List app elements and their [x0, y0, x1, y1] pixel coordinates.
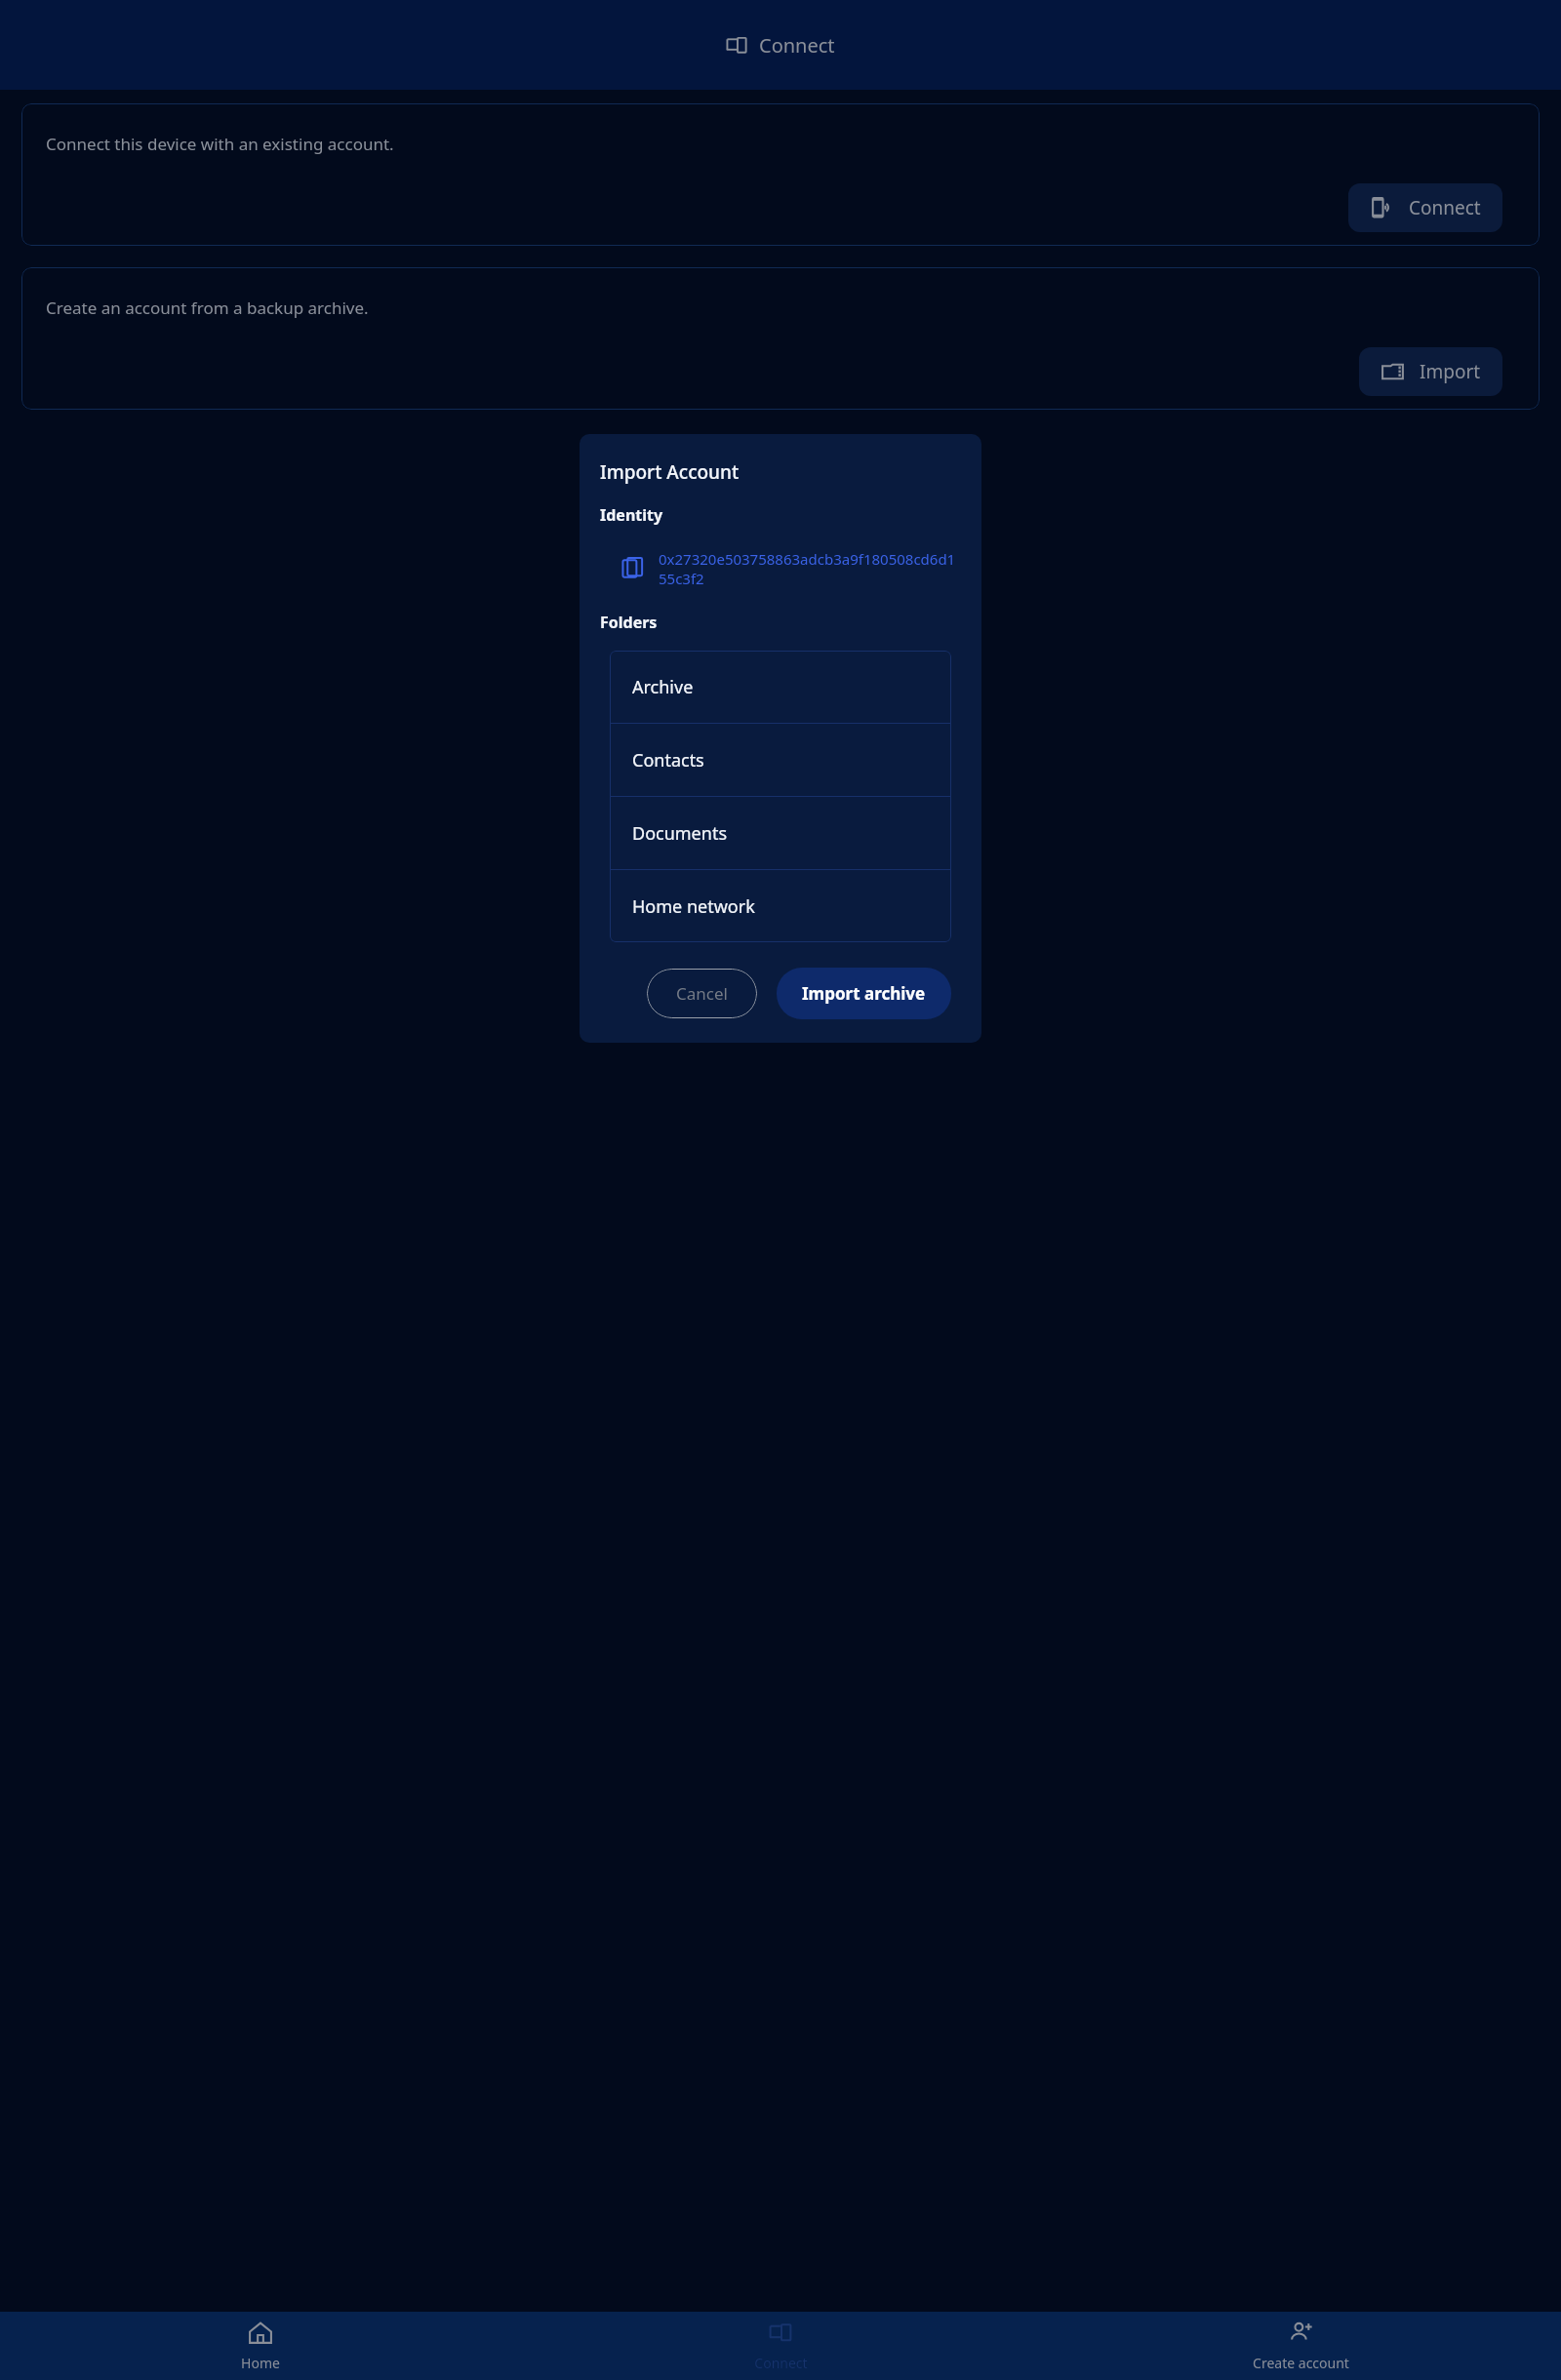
button[interactable]: Documents — [610, 797, 951, 869]
staticText: Documents — [632, 821, 728, 846]
staticText: Import Account — [600, 459, 740, 485]
staticText: Connect this device with an existing acc… — [46, 133, 394, 155]
button[interactable]: Cancel — [647, 969, 757, 1018]
button[interactable]: Home network — [610, 870, 951, 942]
staticText: Connect — [759, 32, 835, 59]
staticText: Cancel — [676, 982, 728, 1005]
button[interactable]: Archive — [610, 651, 951, 723]
button[interactable]: Home — [0, 2312, 521, 2380]
staticText: Create an account from a backup archive. — [46, 297, 369, 319]
staticText: Folders — [600, 612, 658, 633]
button[interactable]: Connect — [1348, 183, 1502, 232]
button[interactable]: Copy identity — [600, 547, 961, 590]
staticText: Create account — [1253, 2354, 1349, 2372]
staticText: Archive — [632, 675, 694, 699]
staticText: Connect — [1409, 195, 1481, 220]
button[interactable]: Contacts — [610, 724, 951, 796]
button[interactable]: Import — [1359, 347, 1502, 396]
staticText: Home — [241, 2354, 280, 2372]
staticText: Home network — [632, 894, 755, 919]
staticText: Identity — [600, 504, 663, 526]
staticText: Connect — [754, 2354, 808, 2372]
other: Copy identity — [621, 557, 645, 580]
staticText: 0x27320e503758863adcb3a9f180508cd6d155c3… — [659, 549, 961, 588]
staticText: Contacts — [632, 748, 704, 773]
staticText: Import — [1420, 359, 1481, 384]
button[interactable]: Create account — [1041, 2312, 1561, 2380]
button[interactable]: Import archive — [777, 968, 951, 1019]
staticText: Import archive — [802, 982, 926, 1005]
